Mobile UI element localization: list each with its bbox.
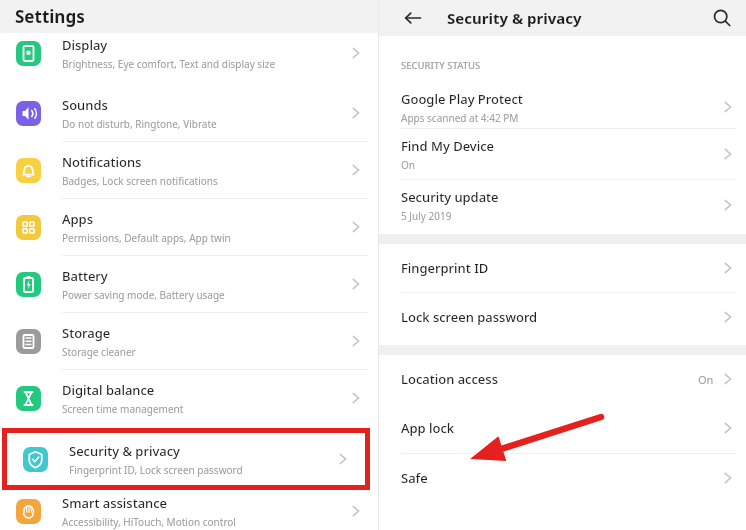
staticText: Smart assistance bbox=[62, 494, 168, 512]
staticText: Digital balance bbox=[62, 381, 155, 399]
button[interactable]: Safe bbox=[379, 454, 746, 502]
button[interactable]: Security & privacy bbox=[7, 433, 365, 485]
button[interactable]: Sounds bbox=[0, 85, 378, 142]
button[interactable]: Search bbox=[708, 4, 736, 32]
button[interactable]: Apps bbox=[0, 199, 378, 256]
staticText: Permissions, Default apps, App twin bbox=[62, 231, 231, 245]
staticText: Fingerprint ID bbox=[401, 259, 489, 277]
button[interactable]: Display bbox=[0, 33, 378, 79]
staticText: 5 July 2019 bbox=[401, 209, 452, 223]
staticText: Find My Device bbox=[401, 137, 495, 155]
staticText: Location access bbox=[401, 370, 498, 388]
staticText: Safe bbox=[401, 469, 428, 487]
staticText: Battery bbox=[62, 267, 108, 285]
staticText: Brightness, Eye comfort, Text and displa… bbox=[62, 57, 276, 71]
button[interactable]: Security update bbox=[379, 180, 746, 230]
staticText: Display bbox=[62, 36, 108, 54]
button[interactable]: App lock bbox=[379, 403, 746, 454]
staticText: Accessibility, HiTouch, Motion control bbox=[62, 515, 236, 529]
button[interactable]: Battery bbox=[0, 256, 378, 313]
staticText: Do not disturb, Ringtone, Vibrate bbox=[62, 117, 217, 131]
button[interactable]: Smart assistance bbox=[0, 492, 378, 530]
staticText: On bbox=[698, 372, 714, 387]
staticText: Sounds bbox=[62, 96, 108, 114]
staticText: Apps scanned at 4:42 PM bbox=[401, 111, 519, 125]
staticText: On bbox=[401, 158, 415, 172]
staticText: Security update bbox=[401, 188, 499, 206]
staticText: Security & privacy bbox=[447, 8, 582, 28]
button[interactable]: Storage bbox=[0, 313, 378, 370]
button[interactable]: Fingerprint ID bbox=[379, 244, 746, 293]
button[interactable]: Find My Device bbox=[379, 129, 746, 180]
button[interactable]: Google Play Protect bbox=[379, 86, 746, 129]
staticText: Google Play Protect bbox=[401, 90, 523, 108]
staticText: Fingerprint ID, Lock screen password bbox=[69, 463, 243, 477]
button[interactable]: Location access bbox=[379, 355, 746, 403]
staticText: Security & privacy bbox=[69, 442, 180, 460]
button[interactable]: Notifications bbox=[0, 142, 378, 199]
button[interactable]: Digital balance bbox=[0, 370, 378, 426]
staticText: Storage cleaner bbox=[62, 345, 136, 359]
staticText: Apps bbox=[62, 210, 93, 228]
staticText: App lock bbox=[401, 419, 455, 437]
staticText: Badges, Lock screen notifications bbox=[62, 174, 218, 188]
staticText: Lock screen password bbox=[401, 308, 538, 326]
staticText: Settings bbox=[15, 5, 85, 28]
staticText: Screen time management bbox=[62, 402, 184, 416]
staticText: SECURITY STATUS bbox=[401, 59, 481, 72]
button[interactable]: Lock screen password bbox=[379, 293, 746, 341]
staticText: Notifications bbox=[62, 153, 142, 171]
staticText: Power saving mode, Battery usage bbox=[62, 288, 225, 302]
button[interactable]: Back bbox=[401, 6, 425, 30]
staticText: Storage bbox=[62, 324, 111, 342]
